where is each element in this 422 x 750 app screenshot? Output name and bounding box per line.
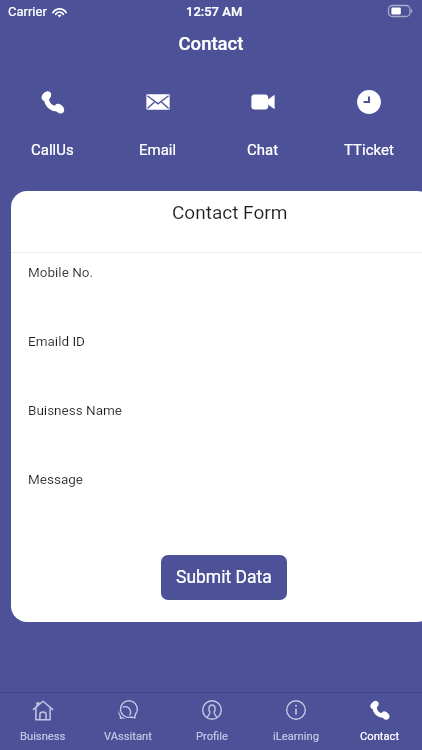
button[interactable]: Emaild ID — [28, 333, 422, 385]
button[interactable]: Call Us — [0, 90, 105, 159]
staticText: Contact — [360, 730, 400, 743]
button[interactable]: Buisness — [0, 693, 85, 750]
staticText: VAssitant — [104, 730, 152, 743]
button[interactable]: Email — [105, 90, 210, 159]
staticText: Carrier — [8, 4, 47, 19]
button[interactable]: iLearning — [254, 693, 338, 750]
button[interactable]: Mobile No. — [28, 264, 422, 316]
button[interactable]: Buisness Name — [28, 402, 422, 454]
button[interactable]: Chat — [210, 90, 316, 159]
button[interactable]: Submit Data — [161, 555, 287, 600]
button[interactable]: Profile — [170, 693, 254, 750]
staticText: iLearning — [273, 730, 319, 743]
staticText: Buisness Name — [28, 402, 122, 418]
staticText: Email — [139, 141, 177, 159]
staticText: Profile — [196, 730, 228, 743]
staticText: Buisness — [20, 730, 66, 743]
staticText: Contact Form — [172, 201, 288, 223]
button[interactable]: Contact — [338, 693, 422, 750]
staticText: Chat — [247, 141, 279, 159]
staticText: 12:57 AM — [186, 4, 243, 19]
staticText: Submit Data — [176, 567, 272, 588]
staticText: CallUs — [31, 141, 74, 159]
button[interactable]: Message — [28, 471, 422, 523]
staticText: Emaild ID — [28, 333, 85, 349]
staticText: TTicket — [344, 141, 394, 159]
button[interactable]: Ticket — [316, 90, 422, 159]
staticText: Mobile No. — [28, 264, 94, 280]
button[interactable]: VAssitant — [85, 693, 170, 750]
staticText: Message — [28, 471, 83, 487]
staticText: Contact — [0, 33, 422, 55]
